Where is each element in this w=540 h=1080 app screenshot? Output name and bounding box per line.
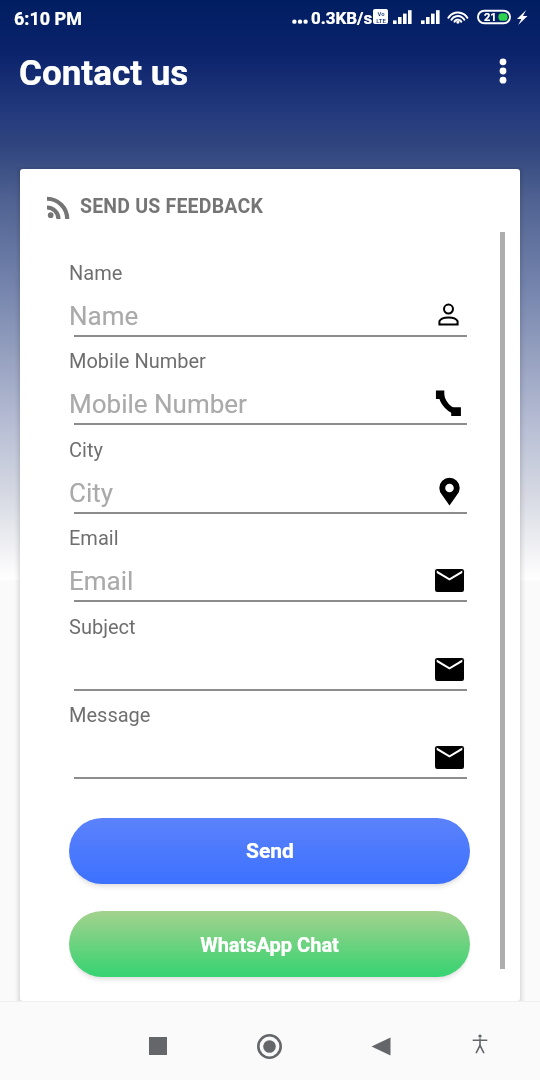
staticText: City <box>69 438 103 461</box>
staticText: WhatsApp Chat <box>200 933 339 956</box>
button[interactable]: Message <box>69 688 467 768</box>
staticText: Name <box>69 261 123 284</box>
staticText: Mobile Number <box>69 349 206 372</box>
staticText: Email <box>69 526 119 549</box>
button[interactable]: Back <box>359 1024 403 1068</box>
button[interactable]: Home <box>247 1024 291 1068</box>
button[interactable]: Recents <box>136 1024 180 1068</box>
button[interactable]: City <box>69 423 467 503</box>
button[interactable]: Name <box>69 246 467 326</box>
button[interactable]: Mobile Number <box>69 334 467 414</box>
staticText: 0.3KB/s <box>311 8 373 28</box>
staticText: Subject <box>69 615 136 638</box>
staticText: City <box>69 478 114 508</box>
button[interactable]: Subject <box>69 600 467 680</box>
staticText: SEND US FEEDBACK <box>80 195 263 218</box>
button[interactable]: More options <box>490 58 516 84</box>
button[interactable]: Send <box>69 818 470 884</box>
staticText: Send <box>246 839 294 864</box>
staticText: 6:10 PM <box>14 8 82 29</box>
staticText: Email <box>69 566 134 596</box>
button[interactable]: Email <box>69 511 467 591</box>
staticText: 21 <box>484 11 497 24</box>
staticText: Name <box>69 301 139 331</box>
button[interactable]: WhatsApp Chat <box>69 911 470 977</box>
staticText: Mobile Number <box>69 389 247 419</box>
button[interactable]: Accessibility <box>458 1021 502 1065</box>
staticText: Message <box>69 703 151 726</box>
staticText: Vo LTE <box>376 10 386 24</box>
staticText: Contact us <box>19 53 189 94</box>
